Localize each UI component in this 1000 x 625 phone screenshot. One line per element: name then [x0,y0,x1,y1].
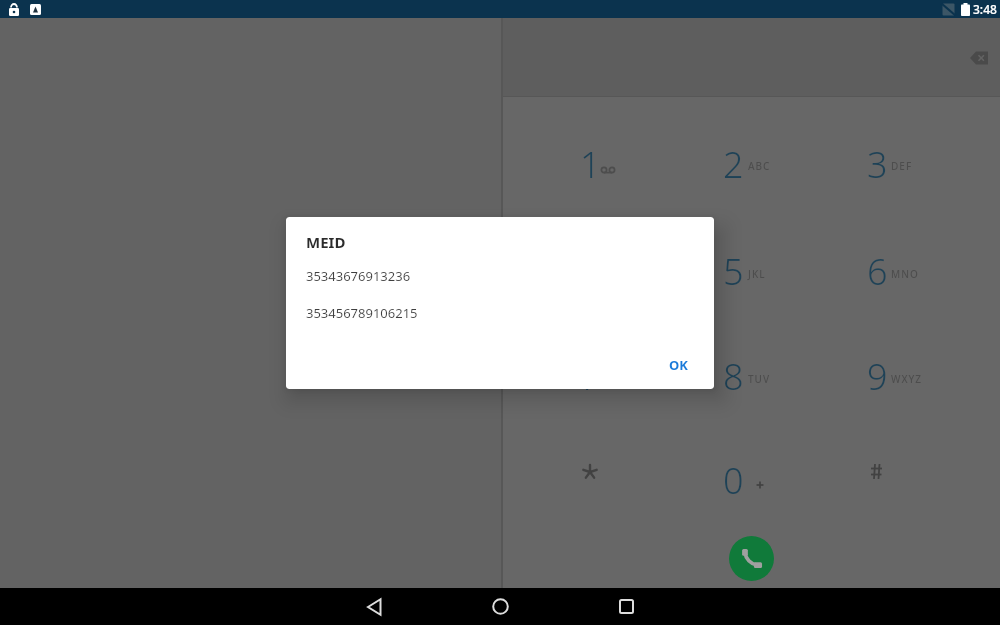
staticText: 3:48 [973,1,997,17]
staticText: TUV [748,372,771,386]
staticText: 2 [723,140,744,189]
staticText: OK [669,356,688,374]
button[interactable] [807,324,947,428]
button[interactable] [520,324,660,428]
staticText: 35343676913236 [306,267,411,285]
staticText: ABC [748,159,771,173]
staticText: 7 [580,352,601,401]
staticText: 5 [723,247,744,296]
staticText: 353456789106215 [306,304,418,322]
button[interactable] [663,324,803,428]
button[interactable] [596,588,656,625]
button[interactable] [470,588,530,625]
button[interactable]: OK [652,347,704,383]
staticText: 9 [867,352,888,401]
staticText: DEF [891,159,913,173]
button[interactable] [344,588,404,625]
staticText: JKL [748,267,766,281]
button[interactable] [663,428,803,532]
staticText: 0 [723,456,744,505]
button[interactable] [807,219,947,323]
staticText: 1 [580,140,601,189]
staticText: 6 [867,247,888,296]
button[interactable] [663,219,803,323]
button[interactable] [729,536,774,581]
button[interactable] [959,38,999,78]
staticText: WXYZ [891,372,923,386]
staticText: MNO [891,267,919,281]
staticText: 3 [867,140,888,189]
button[interactable] [807,112,947,216]
staticText: 8 [723,352,744,401]
staticText: MEID [306,232,346,252]
button[interactable] [520,112,660,216]
button[interactable] [663,112,803,216]
